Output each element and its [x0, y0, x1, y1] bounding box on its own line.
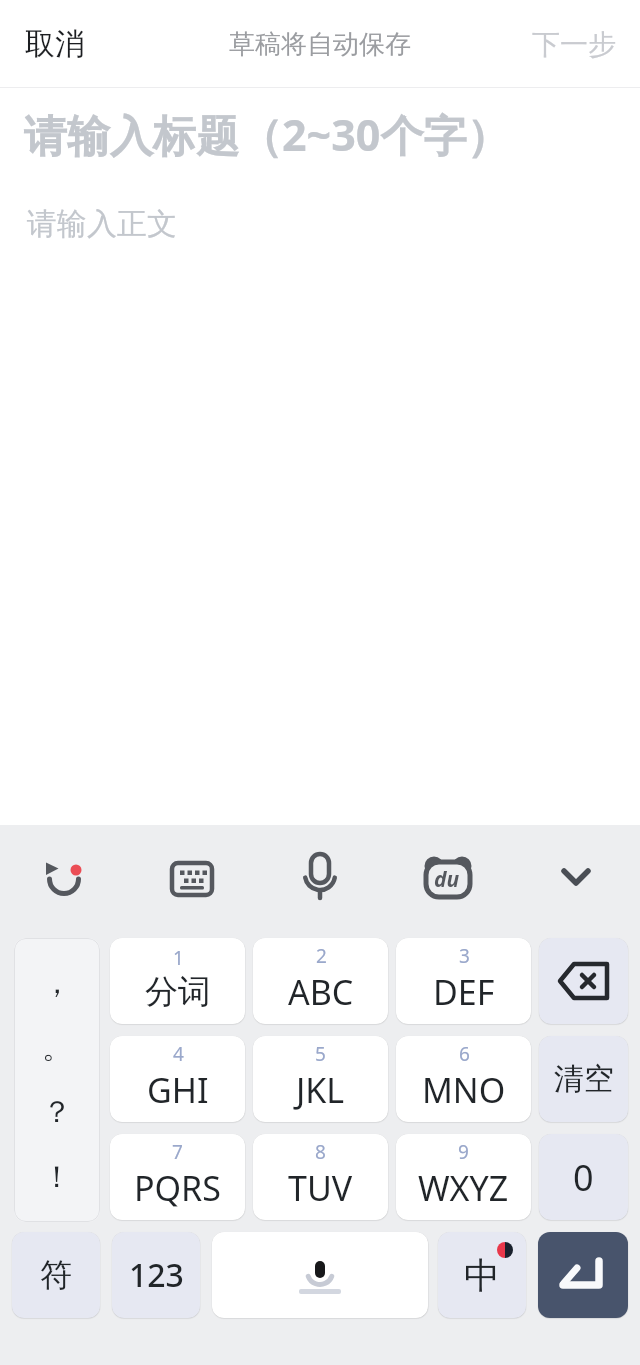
- staticText: du: [434, 865, 460, 894]
- button[interactable]: 下一步: [532, 27, 616, 62]
- button[interactable]: [408, 837, 488, 917]
- staticText: ，: [42, 964, 72, 1002]
- staticText: 请输入正文: [27, 205, 177, 243]
- button[interactable]: 2: [253, 938, 388, 1024]
- staticText: 请输入标题（2~30个字）: [24, 105, 510, 164]
- staticText: 中: [464, 1253, 500, 1298]
- staticText: PQRS: [134, 1165, 221, 1211]
- button[interactable]: 4: [110, 1036, 245, 1122]
- staticText: ？: [42, 1093, 72, 1131]
- staticText: 分词: [145, 971, 211, 1013]
- button[interactable]: 9: [396, 1134, 531, 1220]
- button[interactable]: [280, 837, 360, 917]
- button[interactable]: 取消: [25, 25, 85, 63]
- staticText: 7: [172, 1139, 183, 1165]
- staticText: 4: [173, 1041, 184, 1067]
- staticText: TUV: [288, 1165, 353, 1211]
- button[interactable]: 符: [12, 1232, 100, 1318]
- staticText: WXYZ: [418, 1165, 509, 1211]
- staticText: 3: [459, 943, 470, 969]
- staticText: 9: [458, 1139, 469, 1165]
- staticText: 清空: [554, 1060, 614, 1098]
- button[interactable]: 7: [110, 1134, 245, 1220]
- button[interactable]: ，: [14, 938, 100, 1222]
- button[interactable]: [536, 837, 616, 917]
- button[interactable]: 8: [253, 1134, 388, 1220]
- staticText: GHI: [147, 1067, 209, 1113]
- button[interactable]: [212, 1232, 428, 1318]
- staticText: ABC: [288, 969, 354, 1015]
- staticText: 草稿将自动保存: [229, 28, 411, 61]
- button[interactable]: 5: [253, 1036, 388, 1122]
- staticText: MNO: [422, 1067, 506, 1113]
- button[interactable]: 1: [110, 938, 245, 1024]
- button[interactable]: 123: [112, 1232, 200, 1318]
- staticText: 8: [315, 1139, 326, 1165]
- staticText: JKL: [296, 1067, 345, 1113]
- staticText: 2: [316, 943, 327, 969]
- button[interactable]: 清空: [539, 1036, 628, 1122]
- button[interactable]: [539, 938, 628, 1024]
- button[interactable]: [152, 837, 232, 917]
- staticText: 符: [40, 1255, 72, 1295]
- button[interactable]: [24, 837, 104, 917]
- staticText: 。: [42, 1029, 72, 1067]
- button[interactable]: 6: [396, 1036, 531, 1122]
- staticText: 1: [173, 945, 184, 971]
- staticText: 6: [459, 1041, 470, 1067]
- button[interactable]: 3: [396, 938, 531, 1024]
- button[interactable]: 中: [438, 1232, 526, 1318]
- staticText: ！: [42, 1158, 72, 1196]
- staticText: 5: [315, 1041, 326, 1067]
- button[interactable]: [538, 1232, 628, 1318]
- staticText: 0: [573, 1153, 594, 1202]
- button[interactable]: 0: [539, 1134, 628, 1220]
- staticText: DEF: [433, 969, 495, 1015]
- staticText: 123: [129, 1253, 184, 1297]
